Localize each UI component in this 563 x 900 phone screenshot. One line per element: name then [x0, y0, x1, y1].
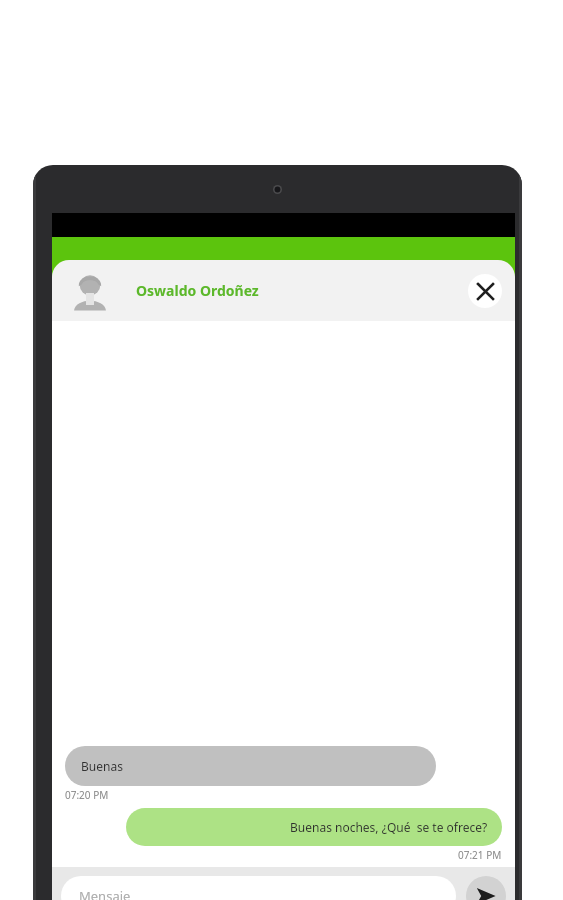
button[interactable]: Buenas noches, ¿Qué se te ofrece?	[126, 808, 502, 846]
staticText: Buenas	[81, 758, 123, 774]
button[interactable]: Mensaje	[61, 876, 456, 900]
staticText: 07:20 PM	[65, 788, 109, 802]
staticText: 07:21 PM	[458, 848, 502, 862]
staticText: Buenas noches, ¿Qué se te ofrece?	[290, 819, 488, 835]
button[interactable]: Send	[466, 876, 506, 900]
staticText: Oswaldo Ordoñez	[136, 281, 259, 300]
button[interactable]: Buenas	[65, 746, 436, 786]
button[interactable]: Oswaldo Ordoñez	[52, 260, 515, 321]
staticText: Mensaje	[79, 887, 131, 900]
button[interactable]: Close	[468, 274, 502, 308]
